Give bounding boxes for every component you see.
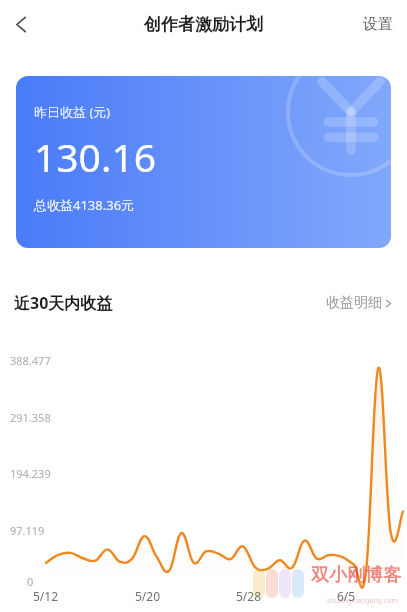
staticText: 291.358 xyxy=(10,410,51,425)
staticText: 6/5 xyxy=(337,588,356,604)
button[interactable]: Back xyxy=(0,3,42,45)
staticText: 5/20 xyxy=(135,588,161,604)
staticText: 5/12 xyxy=(33,588,59,604)
staticText: 194.239 xyxy=(10,466,51,481)
staticText: 388.477 xyxy=(10,353,51,368)
staticText: 创作者激励计划 xyxy=(144,14,263,35)
staticText: 双小刚博客 xyxy=(311,564,401,587)
staticText: 0 xyxy=(27,574,34,589)
staticText: 130.16 xyxy=(34,130,156,183)
staticText: 5/28 xyxy=(236,588,262,604)
button[interactable]: 昨日收益 (元) xyxy=(16,76,391,248)
staticText: 昨日收益 (元) xyxy=(34,103,111,121)
button[interactable]: 设置 xyxy=(349,3,407,46)
staticText: 近30天内收益 xyxy=(14,292,113,314)
staticText: shuangxiaogang.com xyxy=(327,596,399,606)
staticText: 设置 xyxy=(363,15,393,34)
staticText: 收益明细 xyxy=(326,294,382,312)
staticText: 总收益4138.36元 xyxy=(34,196,135,214)
staticText: 97.119 xyxy=(10,523,45,538)
button[interactable]: 收益明细 xyxy=(326,290,393,316)
